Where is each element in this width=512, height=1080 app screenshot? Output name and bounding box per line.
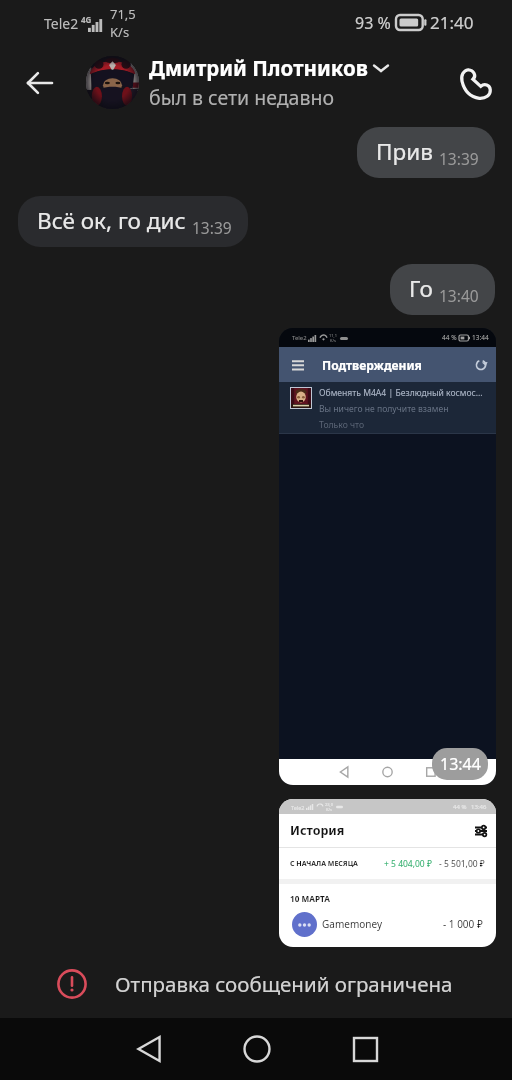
staticText: 11,1 xyxy=(329,333,337,338)
staticText: 21:40 xyxy=(430,11,474,34)
staticText: Всё ок, го дис xyxy=(37,205,186,236)
staticText: - 5 501,00 ₽ xyxy=(439,858,485,870)
staticText: 93 % xyxy=(355,12,391,34)
staticText: 13:39 xyxy=(192,217,232,238)
button[interactable]: Tele2 xyxy=(279,799,496,947)
staticText: + 5 404,00 ₽ xyxy=(384,858,432,870)
button[interactable]: Back xyxy=(18,61,62,105)
staticText: 13:44 xyxy=(472,333,489,342)
staticText: K/s xyxy=(330,338,336,343)
staticText: История xyxy=(290,822,345,839)
staticText: 4G xyxy=(81,14,92,25)
staticText: Tele2 xyxy=(292,334,307,342)
button[interactable]: Call xyxy=(452,59,500,107)
staticText: K/s xyxy=(326,807,332,812)
button[interactable]: Дмитрий Плотников xyxy=(86,54,388,111)
staticText: Отправка сообщений ограничена xyxy=(115,970,453,998)
staticText: С НАЧАЛА МЕСЯЦА xyxy=(290,859,358,869)
staticText: K/s xyxy=(110,23,130,41)
staticText: 44 % xyxy=(442,333,457,342)
staticText: 71,5 xyxy=(110,5,136,23)
button[interactable]: Recent apps xyxy=(329,1018,401,1080)
staticText: - 1 000 ₽ xyxy=(443,917,483,931)
staticText: Только что xyxy=(319,419,365,431)
staticText: Вы ничего не получите взамен xyxy=(319,403,449,415)
staticText: Прив xyxy=(376,136,433,167)
button[interactable]: Back xyxy=(113,1018,185,1080)
staticText: Го xyxy=(409,273,433,304)
button[interactable]: Прив xyxy=(357,127,495,178)
staticText: 13:40 xyxy=(439,285,479,306)
staticText: 13:39 xyxy=(439,148,479,169)
staticText: Gamemoney xyxy=(322,917,382,931)
staticText: был в сети недавно xyxy=(149,84,334,111)
button[interactable]: Tele2 xyxy=(279,328,496,785)
staticText: Tele2 xyxy=(291,804,305,811)
staticText: Tele2 xyxy=(44,14,79,33)
staticText: 44 % 13:46 xyxy=(453,803,487,811)
button[interactable]: Го xyxy=(390,264,495,315)
staticText: 13:44 xyxy=(440,753,481,775)
staticText: Подтверждения xyxy=(322,357,422,373)
button[interactable]: Home xyxy=(221,1018,293,1080)
staticText: Обменять M4A4 | Безлюдный космос… xyxy=(319,387,483,399)
button[interactable]: Всё ок, го дис xyxy=(18,196,248,247)
staticText: Дмитрий Плотников xyxy=(149,54,368,82)
staticText: 23,0 xyxy=(325,802,333,807)
staticText: 10 МАРТА xyxy=(290,893,330,904)
